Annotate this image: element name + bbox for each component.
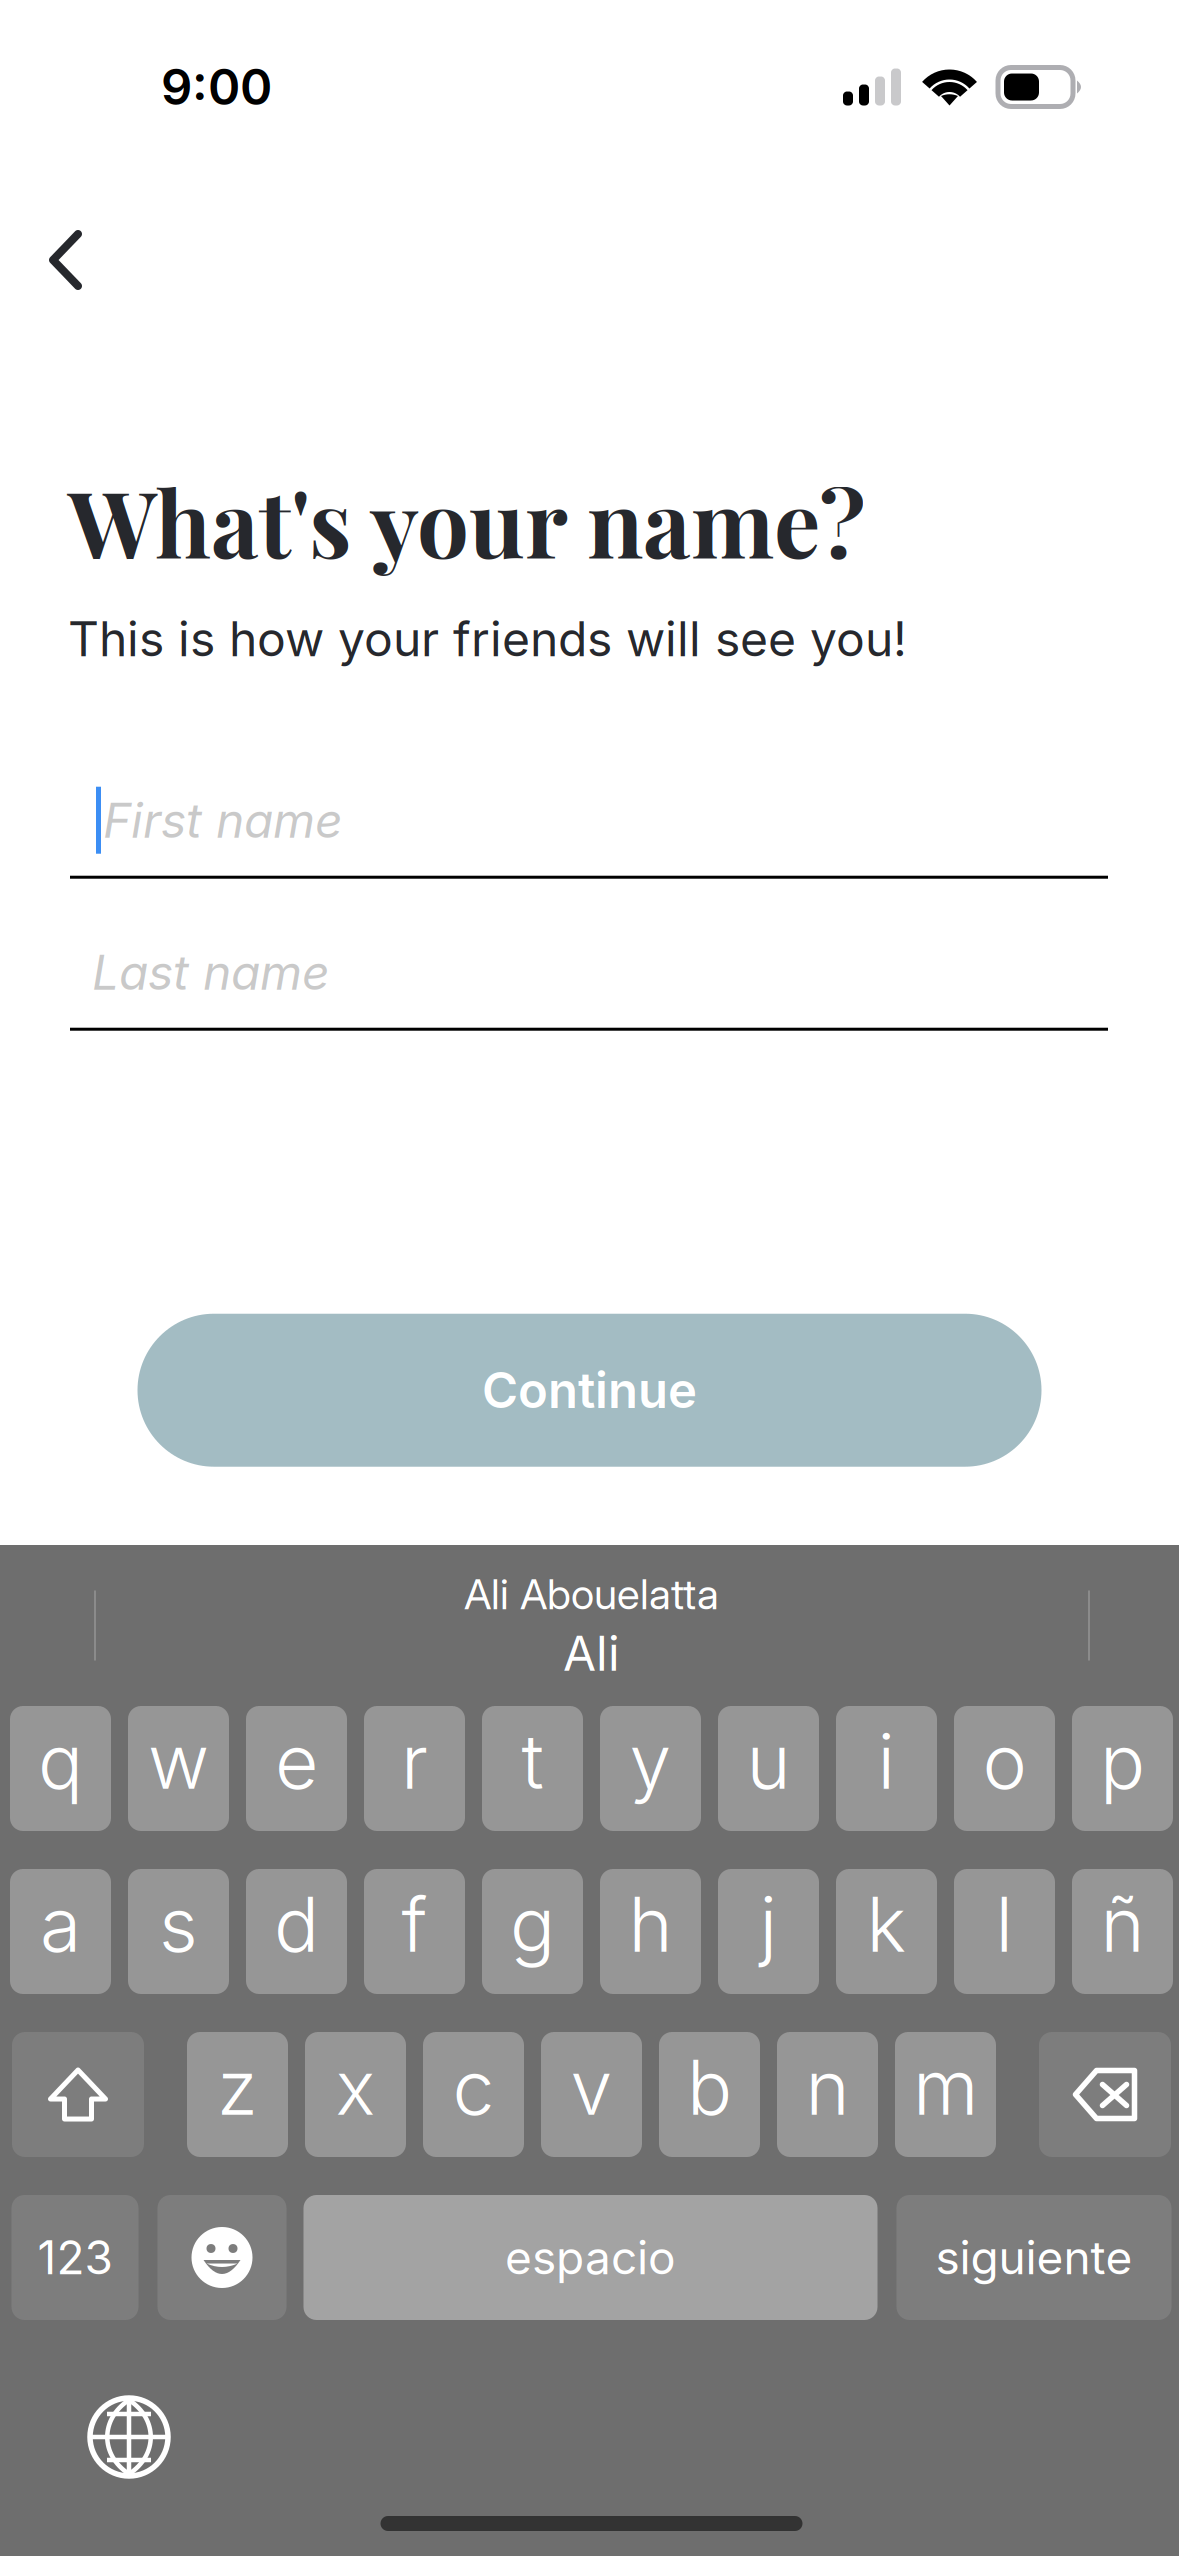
button[interactable]: n [777,2032,878,2157]
staticText: l [995,1879,1013,1970]
button[interactable]: 123 [11,2195,138,2320]
staticText: f [401,1879,427,1970]
staticText: u [746,1716,790,1807]
staticText: First name [103,791,343,849]
staticText: What's your name? [68,459,866,582]
staticText: 123 [37,2230,112,2285]
button[interactable]: b [659,2032,760,2157]
staticText: m [913,2042,978,2133]
staticText: x [335,2042,375,2133]
button[interactable]: Continue [137,1314,1041,1467]
staticText: b [687,2042,732,2133]
staticText: n [805,2042,849,2133]
staticText: espacio [505,2230,676,2285]
staticText: p [1100,1716,1145,1807]
button[interactable]: z [187,2032,288,2157]
button[interactable]: t [482,1706,583,1831]
staticText: 9:00 [161,57,272,117]
button[interactable]: q [10,1706,111,1831]
button[interactable]: x [305,2032,406,2157]
staticText: siguiente [935,2230,1132,2285]
staticText: t [521,1716,543,1807]
staticText: c [452,2042,494,2133]
staticText: i [877,1716,895,1807]
staticText: This is how your friends will see you! [68,610,907,668]
button[interactable]: e [246,1706,347,1831]
button[interactable]: i [836,1706,937,1831]
staticText: Continue [482,1361,697,1420]
button[interactable]: c [423,2032,524,2157]
staticText: h [628,1879,672,1970]
button[interactable]: f [364,1869,465,1994]
staticText: j [759,1879,777,1970]
button[interactable]: p [1072,1706,1173,1831]
button[interactable]: Next keyboard [74,2382,184,2492]
button[interactable]: m [895,2032,996,2157]
staticText: Ali [563,1624,620,1682]
button[interactable]: ñ [1072,1869,1173,1994]
button[interactable]: d [246,1869,347,1994]
staticText: z [217,2042,258,2133]
button[interactable]: espacio [303,2195,877,2320]
staticText: s [159,1879,198,1970]
button[interactable]: siguiente [896,2195,1171,2320]
staticText: a [40,1879,81,1970]
button[interactable]: Back [26,208,105,312]
staticText: w [148,1716,209,1807]
staticText: d [274,1879,319,1970]
staticText: e [275,1716,318,1807]
button[interactable]: Delete [1039,2032,1171,2157]
staticText: y [629,1716,671,1807]
button[interactable]: y [600,1706,701,1831]
button[interactable]: s [128,1869,229,1994]
button[interactable]: u [718,1706,819,1831]
staticText: g [510,1879,555,1970]
staticText: Ali Abouelatta [464,1569,719,1619]
button[interactable]: Emoji [157,2195,286,2320]
button[interactable]: v [541,2032,642,2157]
button[interactable]: o [954,1706,1055,1831]
button[interactable]: w [128,1706,229,1831]
button[interactable]: r [364,1706,465,1831]
button[interactable]: k [836,1869,937,1994]
button[interactable]: j [718,1869,819,1994]
staticText: o [982,1716,1026,1807]
button[interactable]: g [482,1869,583,1994]
button[interactable]: Shift [12,2032,144,2157]
staticText: r [401,1716,428,1807]
staticText: v [570,2042,612,2133]
staticText: Last name [92,943,330,1001]
button[interactable]: a [10,1869,111,1994]
button[interactable]: l [954,1869,1055,1994]
staticText: k [866,1879,906,1970]
staticText: q [38,1716,83,1807]
staticText: ñ [1100,1879,1144,1970]
button[interactable]: h [600,1869,701,1994]
